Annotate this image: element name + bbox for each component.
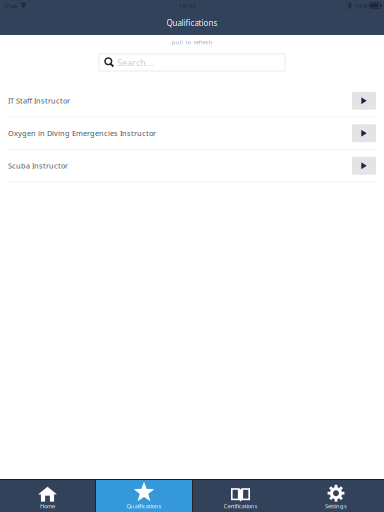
staticText: Home xyxy=(40,502,55,510)
button[interactable]: IT Staff Instructor xyxy=(0,85,384,116)
staticText: Certifications xyxy=(223,502,257,510)
button[interactable]: Settings xyxy=(288,480,384,512)
staticText: Qualifications xyxy=(166,18,217,28)
staticText: pull to refresh xyxy=(171,38,212,46)
staticText: 74% xyxy=(354,1,367,10)
staticText: Qualifications xyxy=(126,502,161,510)
staticText: 16:57 xyxy=(178,1,196,10)
button[interactable]: Oxygen in Diving Emergencies Instructor xyxy=(0,117,384,149)
button[interactable]: Scuba Instructor xyxy=(0,150,384,181)
button[interactable]: Home xyxy=(0,480,95,512)
button[interactable]: Qualifications xyxy=(96,480,192,512)
button[interactable]: Certifications xyxy=(193,480,288,512)
staticText: IT Staff Instructor xyxy=(8,96,70,106)
staticText: Search... xyxy=(117,56,155,69)
staticText: Scuba Instructor xyxy=(8,161,68,171)
staticText: Settings xyxy=(325,502,347,510)
staticText: Oxygen in Diving Emergencies Instructor xyxy=(8,128,156,138)
staticText: iPad xyxy=(4,1,17,10)
